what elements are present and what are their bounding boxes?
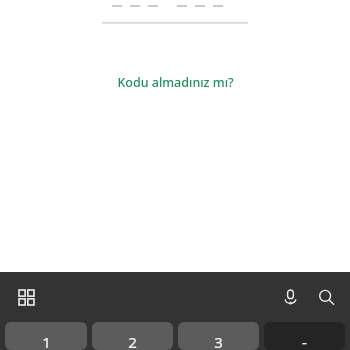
staticText: 3 bbox=[214, 332, 223, 350]
button[interactable]: Keyboard apps bbox=[10, 281, 42, 313]
staticText: 1 bbox=[42, 332, 51, 350]
button[interactable]: 1 bbox=[5, 322, 87, 350]
button[interactable]: Voice input bbox=[273, 280, 307, 314]
staticText: - bbox=[302, 332, 307, 350]
button[interactable]: 2 bbox=[92, 322, 173, 350]
button[interactable]: - bbox=[264, 322, 345, 350]
button[interactable]: Kodu almadınız mı? bbox=[109, 70, 242, 95]
button[interactable]: 3 bbox=[178, 322, 259, 350]
button[interactable] bbox=[0, 0, 350, 30]
button[interactable]: Search bbox=[309, 280, 343, 314]
staticText: Kodu almadınız mı? bbox=[117, 74, 234, 91]
staticText: 2 bbox=[128, 332, 137, 350]
